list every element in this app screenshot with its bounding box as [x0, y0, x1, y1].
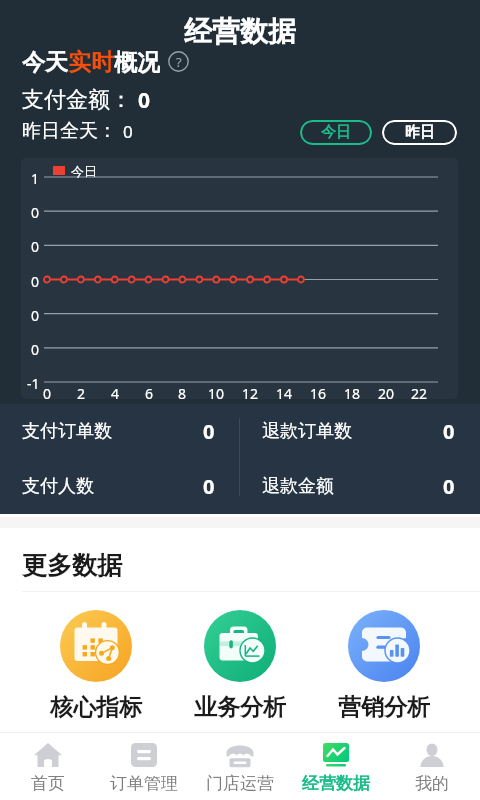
staticText: 10	[208, 384, 225, 399]
button[interactable]: 经营数据	[288, 733, 384, 800]
staticText: 6	[145, 384, 154, 399]
button[interactable]: 帮助说明	[168, 51, 189, 72]
staticText: 0	[43, 384, 52, 399]
staticText: 门店运营	[206, 773, 274, 794]
staticText: 0	[138, 86, 151, 114]
button[interactable]: 支付订单数	[0, 404, 240, 459]
button[interactable]: 订单管理	[96, 733, 192, 800]
button[interactable]: 首页	[0, 733, 96, 800]
staticText: 退款金额	[262, 475, 334, 498]
staticText: 0	[443, 473, 455, 500]
staticText: 经营数据	[302, 773, 370, 794]
button[interactable]: 门店运营	[192, 733, 288, 800]
staticText: 0	[31, 237, 40, 256]
staticText: 更多数据	[22, 550, 122, 581]
staticText: 支付金额：	[22, 86, 132, 114]
button[interactable]: 营销分析	[312, 610, 456, 722]
button[interactable]: 昨日	[382, 120, 457, 145]
button[interactable]: 今日	[300, 120, 372, 145]
staticText: 昨日	[405, 123, 435, 142]
staticText: 0	[123, 120, 133, 143]
staticText: 今日	[71, 163, 97, 179]
staticText: ?	[176, 53, 182, 71]
staticText: 我的	[415, 773, 449, 794]
staticText: 核心指标	[50, 693, 142, 722]
staticText: 业务分析	[194, 693, 286, 722]
staticText: 0	[203, 473, 215, 500]
button[interactable]: 核心指标	[24, 610, 168, 722]
button[interactable]: 退款金额	[240, 459, 480, 514]
staticText: 0	[443, 418, 455, 445]
staticText: 1	[31, 169, 40, 188]
staticText: 支付订单数	[22, 420, 112, 443]
staticText: 0	[203, 418, 215, 445]
button[interactable]: 我的	[384, 733, 480, 800]
staticText: 22	[411, 384, 428, 399]
staticText: 8	[178, 384, 187, 399]
staticText: 今天	[22, 48, 68, 74]
staticText: 今日	[321, 123, 351, 142]
staticText: 20	[378, 384, 395, 399]
staticText: 支付人数	[22, 475, 94, 498]
staticText: 首页	[31, 773, 65, 794]
staticText: 0	[31, 340, 40, 359]
button[interactable]: 退款订单数	[240, 404, 480, 459]
button[interactable]: 业务分析	[168, 610, 312, 722]
staticText: 4	[111, 384, 120, 399]
staticText: 0	[31, 203, 40, 222]
staticText: 18	[344, 384, 361, 399]
staticText: -1	[27, 374, 40, 393]
staticText: 退款订单数	[262, 420, 352, 443]
staticText: 经营数据	[184, 14, 296, 48]
button[interactable]: 支付人数	[0, 459, 240, 514]
staticText: 昨日全天：	[22, 119, 117, 143]
staticText: 12	[242, 384, 259, 399]
staticText: 2	[77, 384, 86, 399]
staticText: 实时	[68, 48, 114, 74]
staticText: 16	[310, 384, 327, 399]
staticText: 概况	[114, 48, 160, 74]
staticText: 营销分析	[338, 693, 430, 722]
staticText: 订单管理	[110, 773, 178, 794]
staticText: 0	[31, 272, 40, 291]
staticText: 0	[31, 306, 40, 325]
staticText: 14	[276, 384, 293, 399]
